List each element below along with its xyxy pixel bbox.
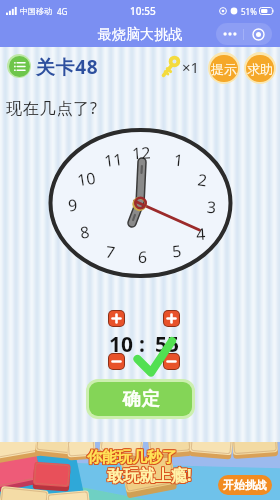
staticText: ×1 <box>182 57 200 77</box>
staticText: 你能玩几秒了 <box>87 447 177 466</box>
staticText: 8 <box>79 220 91 242</box>
button[interactable]: Increase hour <box>109 311 124 326</box>
staticText: 1 <box>173 148 185 169</box>
button[interactable]: More options <box>216 23 243 45</box>
staticText: 现在几点了? <box>6 97 98 119</box>
button[interactable]: 确定 <box>86 379 195 419</box>
staticText: 敢玩就上瘾! <box>108 463 193 485</box>
button[interactable]: Decrease minute <box>164 354 179 369</box>
staticText: 提示 <box>211 61 237 77</box>
button[interactable]: Close mini program <box>244 23 272 45</box>
staticText: 敢玩就上瘾! <box>107 465 192 487</box>
staticText: 你能玩几秒了 <box>86 448 176 467</box>
staticText: 你能玩几秒了 <box>87 449 177 468</box>
button[interactable]: 求助 <box>244 52 276 84</box>
button[interactable]: Advertisement: start challenge <box>0 442 280 500</box>
staticText: 你能玩几秒了 <box>86 449 176 468</box>
staticText: 2 <box>197 168 209 190</box>
staticText: 关卡48 <box>36 54 99 80</box>
staticText: 3 <box>206 196 218 216</box>
staticText: 求助 <box>247 61 273 77</box>
staticText: 你能玩几秒了 <box>88 448 178 467</box>
staticText: 最烧脑大挑战 <box>98 26 182 44</box>
staticText: 敢玩就上瘾! <box>108 464 193 486</box>
staticText: 51% <box>241 6 257 17</box>
staticText: : <box>139 330 145 359</box>
button[interactable]: 提示 <box>208 52 240 84</box>
staticText: 6 <box>138 246 148 266</box>
staticText: 你能玩几秒了 <box>88 449 178 468</box>
staticText: 55 <box>155 330 180 359</box>
staticText: 4G <box>57 6 68 17</box>
staticText: 10 <box>75 167 97 189</box>
staticText: 敢玩就上瘾! <box>108 465 193 487</box>
staticText: 10 <box>109 330 134 359</box>
staticText: 你能玩几秒了 <box>87 448 177 467</box>
staticText: 10:55 <box>130 4 156 18</box>
staticText: 敢玩就上瘾! <box>107 464 192 486</box>
staticText: 你能玩几秒了 <box>88 447 178 466</box>
staticText: 你能玩几秒了 <box>86 447 176 466</box>
staticText: 确定 <box>122 388 160 411</box>
staticText: 敢玩就上瘾! <box>106 465 191 487</box>
staticText: 中国移动 <box>20 6 52 16</box>
button[interactable]: Decrease hour <box>109 354 124 369</box>
staticText: 12 <box>131 141 152 163</box>
staticText: 4 <box>195 223 207 243</box>
staticText: 开始挑战 <box>223 478 267 492</box>
staticText: 7 <box>105 240 117 262</box>
staticText: 5 <box>171 239 183 260</box>
staticText: 敢玩就上瘾! <box>107 463 192 485</box>
staticText: 9 <box>67 193 79 214</box>
button[interactable]: Level list <box>9 56 30 77</box>
staticText: 11 <box>103 148 124 170</box>
staticText: 敢玩就上瘾! <box>106 463 191 485</box>
button[interactable]: Increase minute <box>164 311 179 326</box>
staticText: 敢玩就上瘾! <box>106 464 191 486</box>
button[interactable]: 开始挑战 <box>218 475 272 495</box>
